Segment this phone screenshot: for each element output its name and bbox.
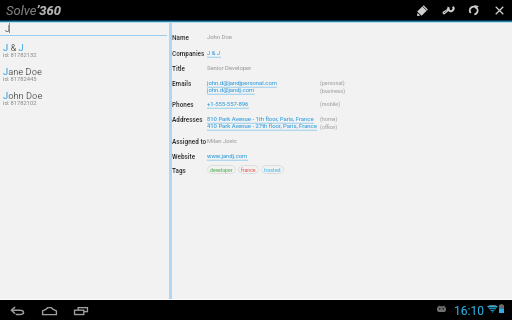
button[interactable]: france [238,165,259,174]
staticText: Jane Doe [3,66,42,77]
button[interactable]: Refresh [461,0,486,20]
staticText: Title [172,65,185,73]
button[interactable]: john.d@jandjpersonal.com [207,80,277,87]
button[interactable]: John Doe [0,90,168,114]
staticText: John Doe [207,34,232,41]
button[interactable]: +1-555-557-896 [207,101,249,108]
staticText: id: 81782445 [3,76,37,83]
staticText: Addresses [172,116,203,124]
staticText: 16:10 [454,304,484,318]
staticText: J [5,24,10,35]
staticText: id: 81782132 [3,52,37,59]
staticText: Tags [172,167,186,175]
staticText: Name [172,34,189,42]
button[interactable]: developer [207,165,236,174]
staticText: Solve’360 [6,3,62,18]
button[interactable]: Tools [435,0,460,20]
button[interactable]: Home [33,301,65,320]
staticText: Companies [172,50,205,58]
button[interactable]: J & J [207,50,221,57]
button[interactable]: 410 Park Avenue - 27th floor, Paris, Fra… [207,123,317,130]
staticText: Emails [172,80,192,88]
button[interactable]: www.jandj.com [207,153,248,160]
button[interactable]: Back [2,301,34,320]
button[interactable]: 810 Park Avenue - 1th floor, Paris, Fran… [207,116,314,123]
button[interactable]: Close [487,0,512,20]
staticText: Milan Jovic [207,138,237,145]
staticText: id: 81782102 [3,100,37,107]
button[interactable]: john.d@jandj.com [207,87,255,94]
staticText: (office) [320,124,338,130]
button[interactable]: J & J [0,42,168,66]
staticText: John Doe [3,90,43,101]
staticText: Website [172,153,196,161]
staticText: (home) [320,116,338,122]
staticText: trusted [264,167,281,173]
button[interactable]: Edit [410,0,435,20]
staticText: Phones [172,101,194,109]
button[interactable]: Recent apps [65,301,97,320]
staticText: france [241,167,256,173]
button[interactable]: trusted [261,165,284,174]
staticText: (personal) [320,80,345,86]
staticText: (business) [320,88,346,94]
staticText: J & J [3,42,24,53]
staticText: Senior Developer [207,65,252,72]
button[interactable]: Jane Doe [0,66,168,90]
staticText: Assigned to [172,138,207,146]
staticText: (mobile) [320,101,341,107]
staticText: developer [210,167,233,173]
